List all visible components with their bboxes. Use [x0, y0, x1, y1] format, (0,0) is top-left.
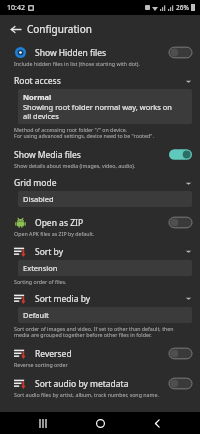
button[interactable]: Back	[5, 19, 25, 39]
staticText: Sort media by	[35, 293, 185, 305]
staticText: Showing root folder normal way, works on…	[23, 102, 173, 121]
staticText: Show details about media (images, video,…	[14, 162, 192, 169]
staticText: Extension	[23, 263, 58, 273]
staticText: Sort audio by metadata	[35, 378, 169, 390]
staticText: Open APK files as ZIP by default.	[14, 230, 192, 237]
staticText: Normal	[23, 92, 52, 102]
button[interactable]: Off	[169, 347, 192, 360]
button[interactable]: Back	[144, 412, 170, 434]
button[interactable]: Show Hidden files	[0, 42, 200, 72]
staticText: Sorting order of files.	[14, 278, 194, 285]
button[interactable]: Root access	[0, 72, 200, 144]
staticText: Root access	[14, 75, 185, 87]
button[interactable]: Reversed	[0, 343, 200, 373]
button[interactable]: Off	[169, 216, 192, 229]
staticText: Reverse sorting order	[14, 361, 192, 368]
button[interactable]: Open as ZIP	[0, 212, 200, 242]
button[interactable]: Recents	[31, 412, 57, 434]
staticText: 10:42	[7, 3, 25, 13]
button[interactable]: Off	[169, 377, 192, 390]
button[interactable]: Sort media by	[0, 289, 200, 343]
staticText: 26%	[176, 3, 189, 12]
staticText: Open as ZIP	[35, 217, 169, 229]
button[interactable]: Show Media files	[0, 144, 200, 174]
staticText: Sort audio files by artist, album, track…	[14, 391, 192, 398]
staticText: Reversed	[35, 348, 169, 360]
button[interactable]: Sort by	[0, 242, 200, 289]
staticText: Grid mode	[14, 177, 185, 189]
button[interactable]: Home	[87, 412, 113, 434]
staticText: Show Media files	[14, 149, 169, 161]
staticText: Sort by	[35, 246, 185, 258]
staticText: Configuration	[27, 22, 92, 36]
button[interactable]: Sort audio by metadata	[0, 373, 200, 403]
staticText: Method of accessing root folder "/" on d…	[14, 126, 194, 140]
staticText: Default	[23, 310, 49, 320]
staticText: Show Hidden files	[35, 47, 169, 59]
button[interactable]: Grid mode	[0, 174, 200, 212]
staticText: Include hidden files in list (those star…	[14, 60, 192, 67]
button[interactable]: Off	[169, 46, 192, 59]
button[interactable]: On	[169, 148, 192, 161]
staticText: Disabled	[23, 194, 54, 204]
staticText: Sort order of images and video. If set t…	[14, 325, 194, 339]
